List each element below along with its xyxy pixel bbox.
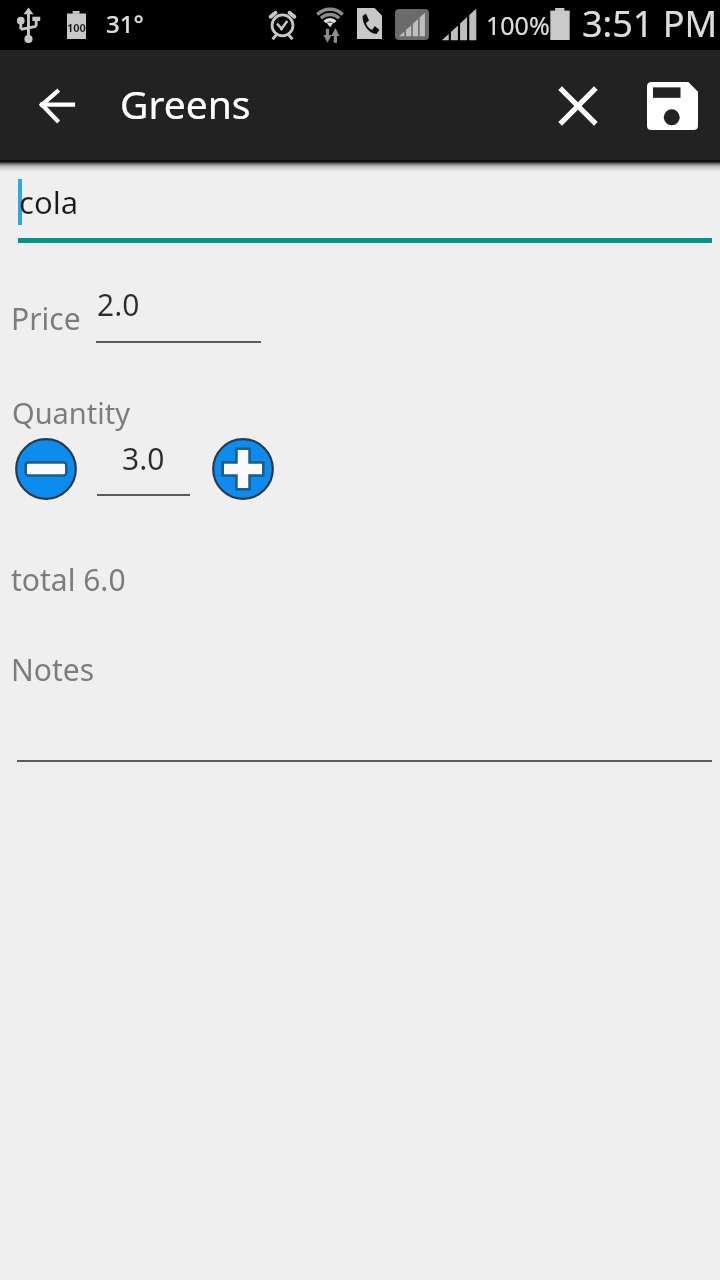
staticText: 2.0	[97, 284, 140, 325]
staticText: 31°	[106, 7, 144, 40]
button[interactable]: Save	[634, 50, 710, 161]
button[interactable]: Cancel	[540, 50, 616, 161]
staticText: total 6.0	[11, 559, 126, 600]
button[interactable]: Increase quantity	[212, 438, 274, 500]
staticText: Notes	[11, 649, 95, 690]
staticText: 3:51 PM	[582, 0, 718, 48]
button[interactable]: Back	[18, 50, 94, 161]
button[interactable]: cola	[19, 181, 79, 223]
staticText: cola	[19, 181, 79, 223]
button[interactable]: 2.0	[97, 284, 140, 325]
staticText: Greens	[120, 77, 251, 130]
staticText: Price	[11, 298, 81, 339]
staticText: 100%	[486, 8, 550, 42]
button[interactable]: Notes field	[17, 700, 712, 762]
staticText: Quantity	[12, 393, 130, 432]
staticText: 100	[67, 20, 86, 32]
button[interactable]: Decrease quantity	[15, 438, 77, 500]
staticText: 3.0	[122, 438, 165, 479]
button[interactable]: 3.0	[122, 438, 165, 479]
